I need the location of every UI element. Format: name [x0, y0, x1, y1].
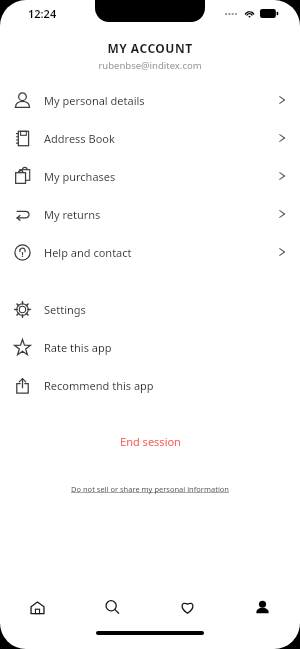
button[interactable]: Address Book [0, 119, 300, 157]
staticText: My personal details [44, 93, 145, 108]
button[interactable]: Search [75, 585, 150, 629]
button[interactable]: Settings [0, 290, 300, 328]
button[interactable]: Rate this app [0, 328, 300, 366]
staticText: Settings [44, 302, 86, 317]
staticText: My returns [44, 207, 101, 222]
staticText: End session [120, 434, 181, 449]
button[interactable]: My returns [0, 195, 300, 233]
staticText: Address Book [44, 131, 115, 146]
staticText: MY ACCOUNT [0, 40, 300, 56]
button[interactable]: Do not sell or share my personal informa… [0, 480, 300, 498]
button[interactable]: End session [0, 430, 300, 452]
staticText: rubenbse@inditex.com [0, 59, 300, 72]
staticText: Recommend this app [44, 378, 154, 393]
button[interactable]: Favourites [150, 585, 225, 629]
button[interactable]: Recommend this app [0, 366, 300, 404]
button[interactable]: My purchases [0, 157, 300, 195]
staticText: Help and contact [44, 245, 132, 260]
staticText: Do not sell or share my personal informa… [71, 484, 229, 494]
staticText: Rate this app [44, 340, 112, 355]
staticText: 12:24 [28, 6, 57, 21]
button[interactable]: My account [225, 585, 300, 629]
button[interactable]: Help and contact [0, 233, 300, 271]
button[interactable]: Home [0, 585, 75, 629]
staticText: My purchases [44, 169, 116, 184]
button[interactable]: My personal details [0, 81, 300, 119]
